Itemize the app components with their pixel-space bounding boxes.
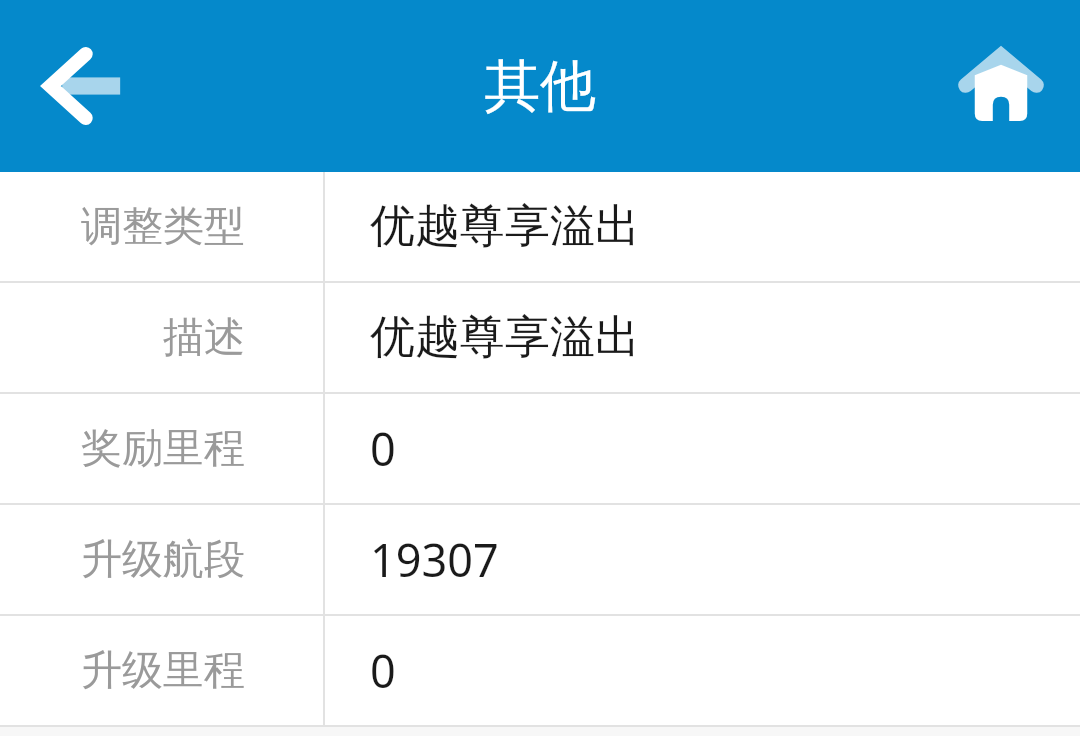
staticText: 19307 bbox=[370, 529, 499, 590]
staticText: 0 bbox=[370, 418, 396, 479]
button[interactable]: 调整类型 bbox=[0, 172, 1080, 281]
staticText: 奖励里程 bbox=[81, 423, 245, 475]
staticText: 优越尊享溢出 bbox=[370, 309, 640, 366]
button[interactable]: Back bbox=[14, 21, 144, 151]
staticText: 升级里程 bbox=[81, 645, 245, 697]
button[interactable]: Home bbox=[936, 21, 1066, 151]
staticText: 优越尊享溢出 bbox=[370, 198, 640, 255]
staticText: 其他 bbox=[484, 51, 596, 122]
staticText: 调整类型 bbox=[81, 201, 245, 253]
button[interactable]: 升级航段 bbox=[0, 505, 1080, 614]
staticText: 描述 bbox=[163, 312, 245, 364]
button[interactable]: 奖励里程 bbox=[0, 394, 1080, 503]
button[interactable]: 升级里程 bbox=[0, 616, 1080, 725]
staticText: 升级航段 bbox=[81, 534, 245, 586]
staticText: 0 bbox=[370, 640, 396, 701]
button[interactable]: 描述 bbox=[0, 283, 1080, 392]
